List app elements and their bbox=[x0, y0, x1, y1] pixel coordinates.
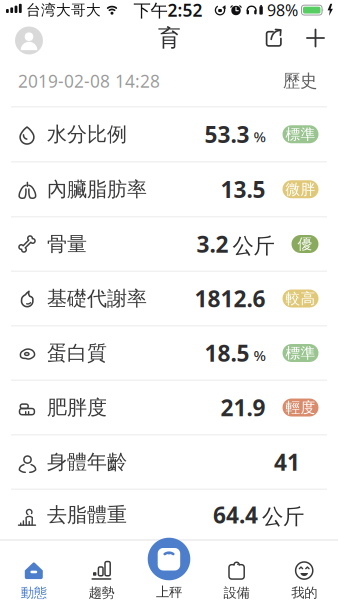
button[interactable]: 肥胖度 bbox=[0, 381, 338, 434]
staticText: 標準 bbox=[285, 344, 315, 362]
staticText: 64.4 bbox=[213, 500, 258, 530]
staticText: 歷史 bbox=[283, 70, 317, 92]
button[interactable]: 動態 bbox=[0, 539, 68, 600]
staticText: 內臟脂肪率 bbox=[47, 177, 147, 202]
button[interactable]: 水分比例 bbox=[0, 107, 338, 161]
staticText: 設備 bbox=[224, 585, 250, 600]
staticText: 41 bbox=[274, 447, 300, 477]
button[interactable]: 新增 bbox=[307, 29, 324, 46]
button[interactable]: 個人資料 bbox=[15, 24, 43, 52]
staticText: 趨勢 bbox=[88, 585, 114, 600]
button[interactable]: 骨量 bbox=[0, 217, 338, 270]
staticText: 台湾大哥大 bbox=[26, 1, 101, 19]
button[interactable]: 趨勢 bbox=[68, 539, 135, 600]
staticText: 下午2:52 bbox=[133, 0, 202, 21]
button[interactable]: 設備 bbox=[203, 539, 270, 600]
staticText: 公斤 bbox=[262, 504, 304, 530]
button[interactable]: 我的 bbox=[270, 539, 338, 600]
button[interactable]: 基礎代謝率 bbox=[0, 272, 338, 325]
staticText: 較高 bbox=[285, 289, 315, 307]
staticText: 13.5 bbox=[220, 174, 265, 204]
staticText: 上秤 bbox=[156, 584, 182, 600]
button[interactable]: 身體年齡 bbox=[0, 435, 338, 488]
staticText: 去脂體重 bbox=[47, 502, 127, 527]
staticText: 標準 bbox=[285, 125, 315, 143]
staticText: 微胖 bbox=[285, 180, 315, 198]
button[interactable]: 上秤 bbox=[135, 539, 203, 600]
staticText: 21.9 bbox=[220, 392, 265, 422]
staticText: % bbox=[253, 127, 265, 146]
staticText: 動態 bbox=[21, 585, 47, 600]
staticText: 2019-02-08 14:28 bbox=[18, 69, 160, 92]
staticText: 98% bbox=[267, 0, 298, 21]
staticText: 18.5 bbox=[204, 338, 249, 368]
button[interactable]: 去脂體重 bbox=[0, 490, 338, 539]
staticText: 水分比例 bbox=[47, 122, 127, 147]
staticText: 肥胖度 bbox=[47, 395, 107, 420]
staticText: 53.3 bbox=[204, 119, 249, 149]
staticText: 公斤 bbox=[232, 233, 274, 259]
button[interactable]: 分享 bbox=[264, 28, 284, 47]
staticText: 身體年齡 bbox=[47, 450, 127, 474]
staticText: 育 bbox=[158, 24, 181, 52]
staticText: 骨量 bbox=[47, 232, 87, 256]
button[interactable]: 蛋白質 bbox=[0, 326, 338, 379]
staticText: 1812.6 bbox=[194, 283, 265, 313]
staticText: 蛋白質 bbox=[47, 341, 107, 365]
staticText: % bbox=[253, 346, 265, 365]
staticText: 優 bbox=[297, 235, 312, 253]
staticText: 輕度 bbox=[285, 398, 315, 416]
staticText: 3.2 bbox=[196, 229, 228, 259]
staticText: 基礎代謝率 bbox=[47, 286, 147, 311]
button[interactable]: 歷史 bbox=[283, 70, 317, 92]
staticText: 我的 bbox=[291, 585, 317, 600]
button[interactable]: 內臟脂肪率 bbox=[0, 162, 338, 216]
